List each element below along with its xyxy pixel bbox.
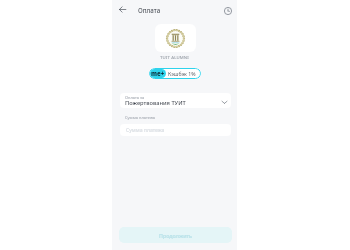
staticText: Сумма платежа <box>125 115 156 120</box>
button[interactable]: me+ <box>150 68 200 79</box>
staticText: Оплата за <box>125 95 145 100</box>
button[interactable]: Back <box>116 3 129 16</box>
staticText: Пожертвования ТУИТ <box>125 99 186 107</box>
button[interactable]: History <box>221 4 234 17</box>
button[interactable]: Оплата за <box>120 93 231 108</box>
staticText: TUIT ALUMNI <box>160 54 189 60</box>
staticText: Сумма платежа <box>126 127 165 134</box>
button[interactable]: Сумма платежа <box>120 124 231 136</box>
staticText: Продолжить <box>159 232 192 239</box>
staticText: Оплата <box>138 6 161 14</box>
staticText: me+ <box>151 70 165 78</box>
staticText: Кэшбэк 1% <box>168 70 196 77</box>
button[interactable]: Продолжить <box>119 227 232 243</box>
